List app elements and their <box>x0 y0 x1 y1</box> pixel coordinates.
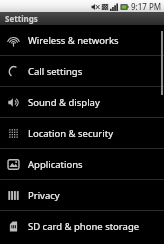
staticText: 9:17 PM <box>131 1 162 12</box>
button[interactable]: Wireless & networks <box>0 25 164 55</box>
staticText: SD card & phone storage <box>28 220 140 233</box>
button[interactable]: Location & security <box>0 118 164 148</box>
staticText: Applications <box>28 158 83 171</box>
button[interactable]: Applications <box>0 149 164 179</box>
staticText: Wireless & networks <box>28 34 119 47</box>
staticText: Privacy <box>28 189 60 202</box>
staticText: Sound & display <box>28 96 100 109</box>
staticText: Settings <box>5 13 38 24</box>
button[interactable]: Call settings <box>0 56 164 86</box>
staticText: Call settings <box>28 65 83 78</box>
staticText: Location & security <box>28 127 113 140</box>
button[interactable]: Privacy <box>0 180 164 210</box>
button[interactable]: SD card & phone storage <box>0 211 164 241</box>
button[interactable]: Sound & display <box>0 87 164 117</box>
